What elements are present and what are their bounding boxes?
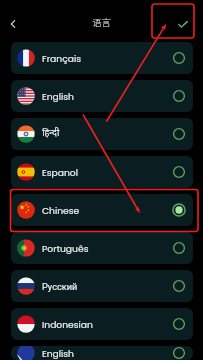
button[interactable]: Indonesian bbox=[11, 308, 193, 340]
button[interactable]: Português bbox=[11, 232, 193, 264]
staticText: English bbox=[42, 90, 74, 103]
staticText: Indonesian bbox=[42, 318, 93, 331]
staticText: 语言 bbox=[92, 15, 112, 29]
button[interactable]: English bbox=[11, 80, 193, 112]
staticText: Chinese bbox=[42, 204, 80, 217]
button[interactable]: Русский bbox=[11, 270, 193, 302]
staticText: हिन्दी bbox=[42, 128, 60, 140]
staticText: Espanol bbox=[42, 166, 78, 179]
button[interactable]: Espanol bbox=[11, 156, 193, 188]
staticText: Português bbox=[42, 242, 89, 255]
button[interactable]: Chinese bbox=[11, 194, 193, 226]
button[interactable]: हिन्दी bbox=[11, 118, 193, 150]
button[interactable]: Back bbox=[2, 13, 24, 35]
staticText: Français bbox=[42, 52, 81, 65]
button[interactable]: English bbox=[11, 346, 193, 360]
button[interactable]: Français bbox=[11, 42, 193, 74]
staticText: English bbox=[42, 347, 74, 360]
button[interactable]: Confirm bbox=[173, 14, 193, 34]
staticText: Русский bbox=[42, 281, 78, 292]
